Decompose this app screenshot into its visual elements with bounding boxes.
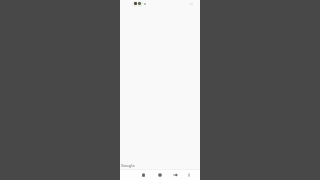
button[interactable]: Share [171,170,180,179]
button[interactable]: More options [184,170,193,179]
staticText: Google [121,163,135,168]
button[interactable]: Discover [155,170,164,179]
button[interactable]: Home [139,170,148,179]
